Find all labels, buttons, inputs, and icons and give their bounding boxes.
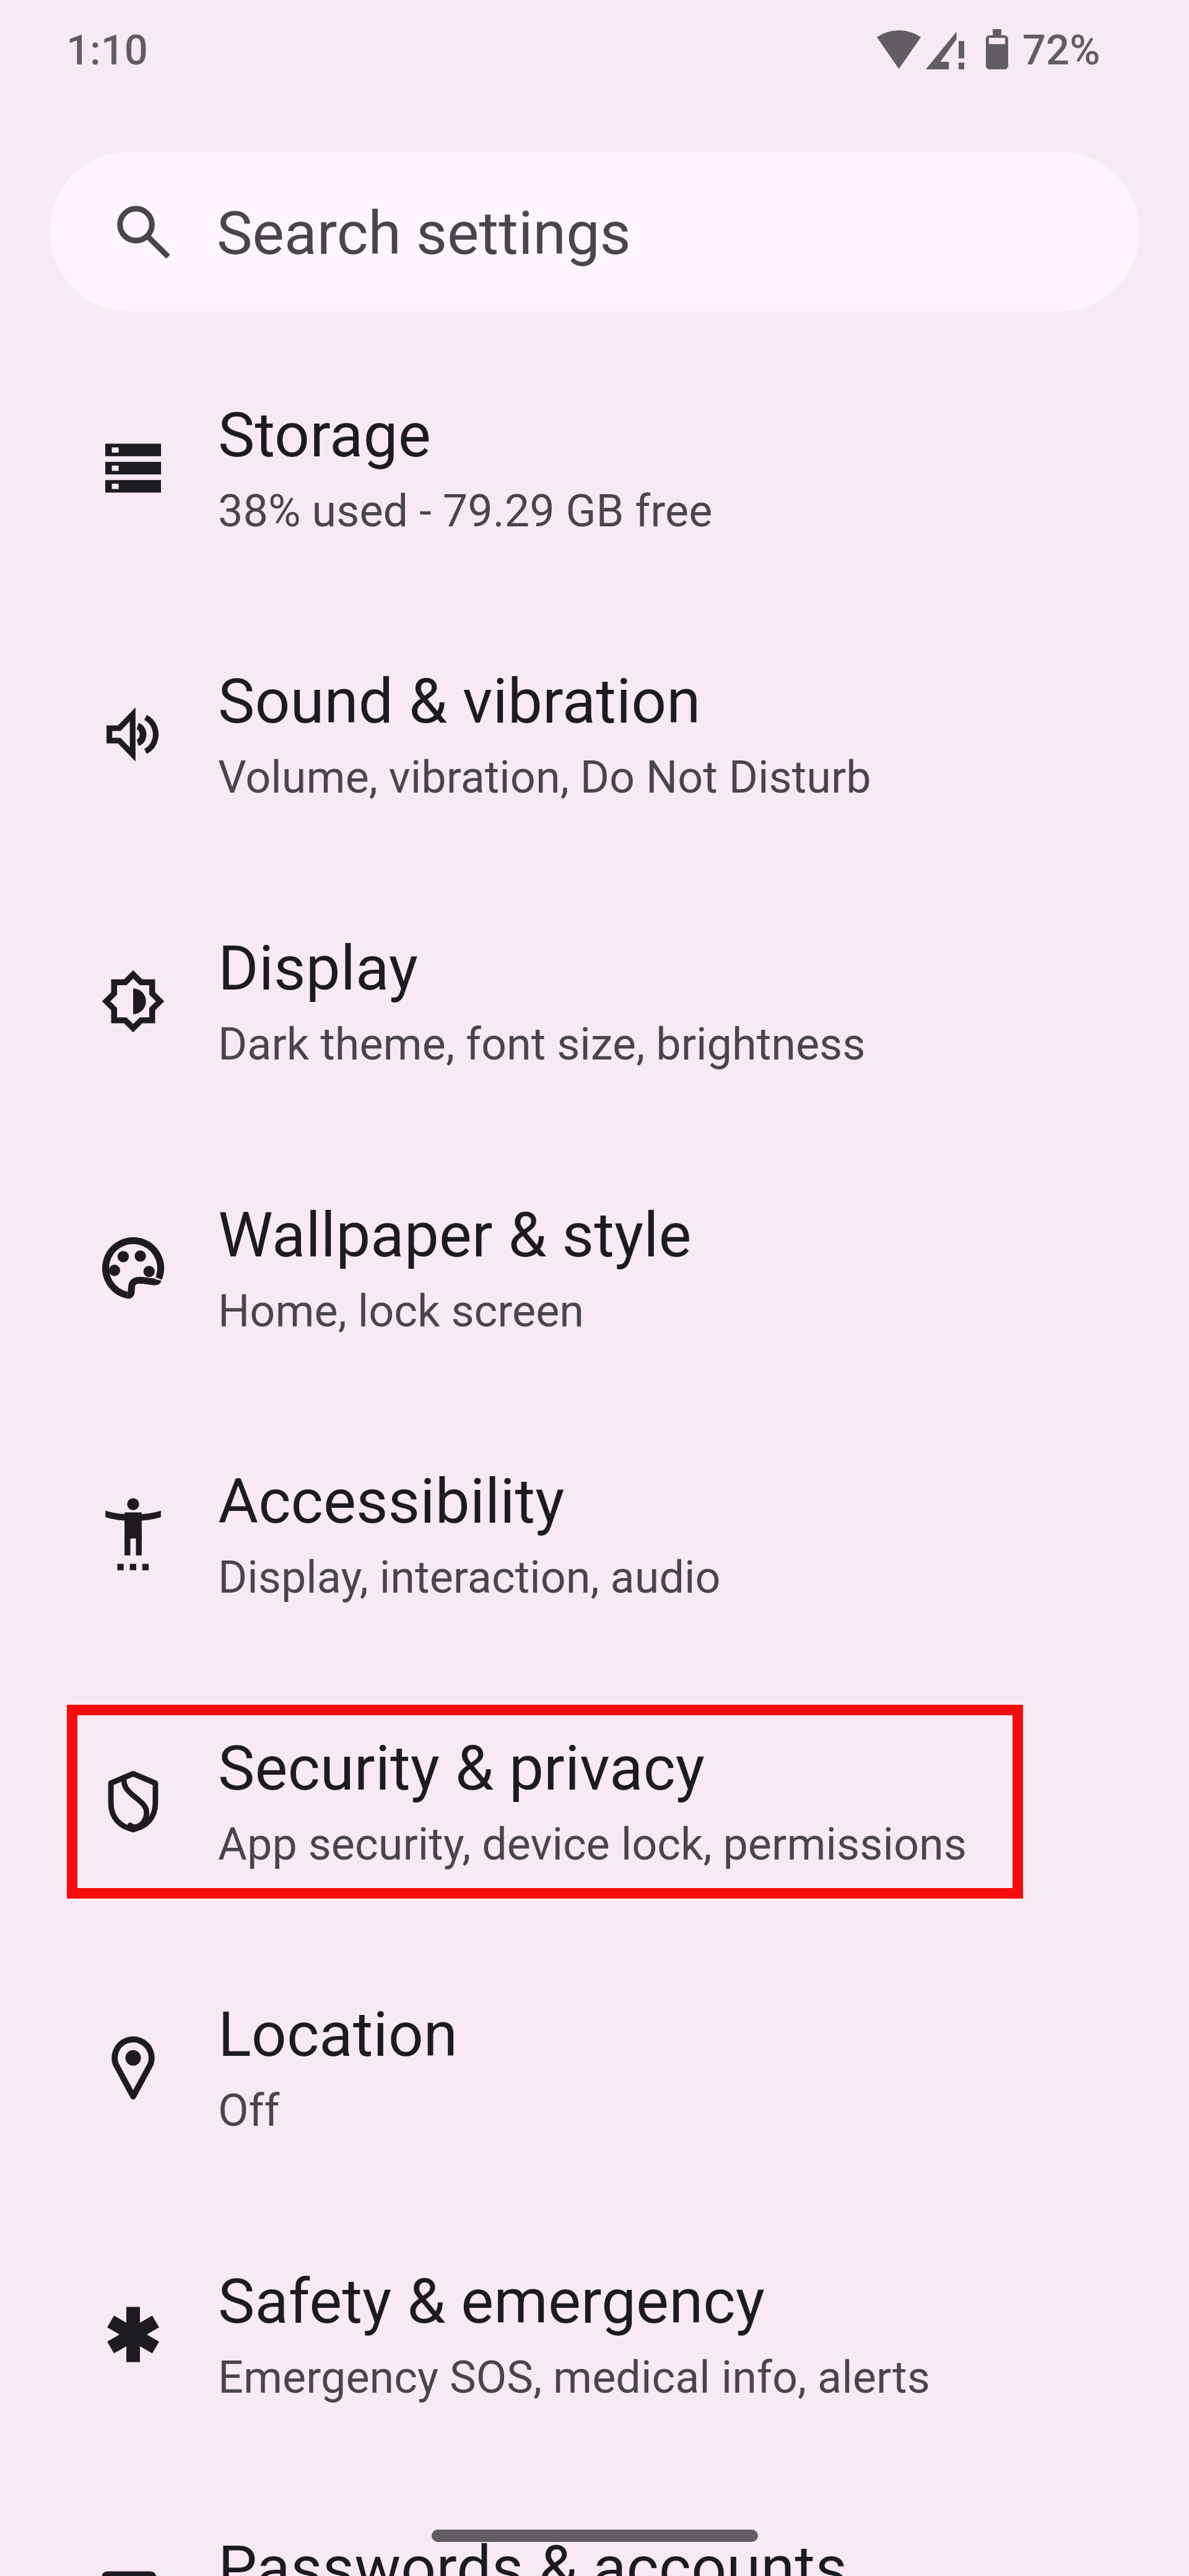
staticText: Security & privacy — [218, 1732, 705, 1804]
staticText: Volume, vibration, Do Not Disturb — [218, 751, 871, 803]
button[interactable]: Wallpaper and style — [0, 1134, 1189, 1401]
staticText: Sound & vibration — [218, 665, 701, 738]
staticText: 38% used - 79.29 GB free — [218, 485, 713, 537]
staticText: Home, lock screen — [218, 1285, 585, 1337]
staticText: Off — [218, 2084, 280, 2136]
staticText: Storage — [218, 399, 431, 471]
staticText: Dark theme, font size, brightness — [218, 1018, 866, 1070]
staticText: Location — [218, 1998, 458, 2071]
button[interactable]: Passwords and accounts — [0, 2468, 1189, 2576]
other: Safety and emergency — [98, 2300, 168, 2369]
staticText: 72% — [1022, 26, 1100, 75]
button[interactable]: Safety and emergency — [0, 2201, 1189, 2468]
staticText: Display — [218, 932, 418, 1004]
staticText: Search settings — [217, 198, 631, 269]
staticText: Passwords & accounts — [218, 2532, 847, 2576]
other: Accessibility — [98, 1500, 168, 1569]
other: Display — [98, 967, 168, 1036]
other: Sound and vibration — [98, 700, 168, 769]
other: Passwords and accounts — [98, 2567, 168, 2576]
staticText: App security, device lock, permissions — [218, 1818, 967, 1870]
button[interactable]: Security and privacy — [0, 1668, 1189, 1934]
staticText: 1:10 — [66, 26, 148, 75]
button[interactable]: Display — [0, 868, 1189, 1134]
staticText: Emergency SOS, medical info, alerts — [218, 2351, 930, 2403]
other: Security and privacy — [98, 1767, 168, 1836]
button[interactable]: Search settings — [50, 152, 1139, 311]
staticText: Safety & emergency — [218, 2265, 765, 2338]
button[interactable]: Storage — [0, 334, 1189, 601]
other: Storage — [98, 433, 168, 503]
staticText: Display, interaction, audio — [218, 1551, 721, 1603]
staticText: Accessibility — [218, 1465, 565, 1538]
other: Location — [98, 2033, 168, 2102]
button[interactable]: Accessibility — [0, 1401, 1189, 1668]
button[interactable]: Location — [0, 1934, 1189, 2201]
staticText: Wallpaper & style — [218, 1199, 692, 1271]
other: Wallpaper and style — [98, 1234, 168, 1303]
button[interactable]: Sound and vibration — [0, 601, 1189, 868]
